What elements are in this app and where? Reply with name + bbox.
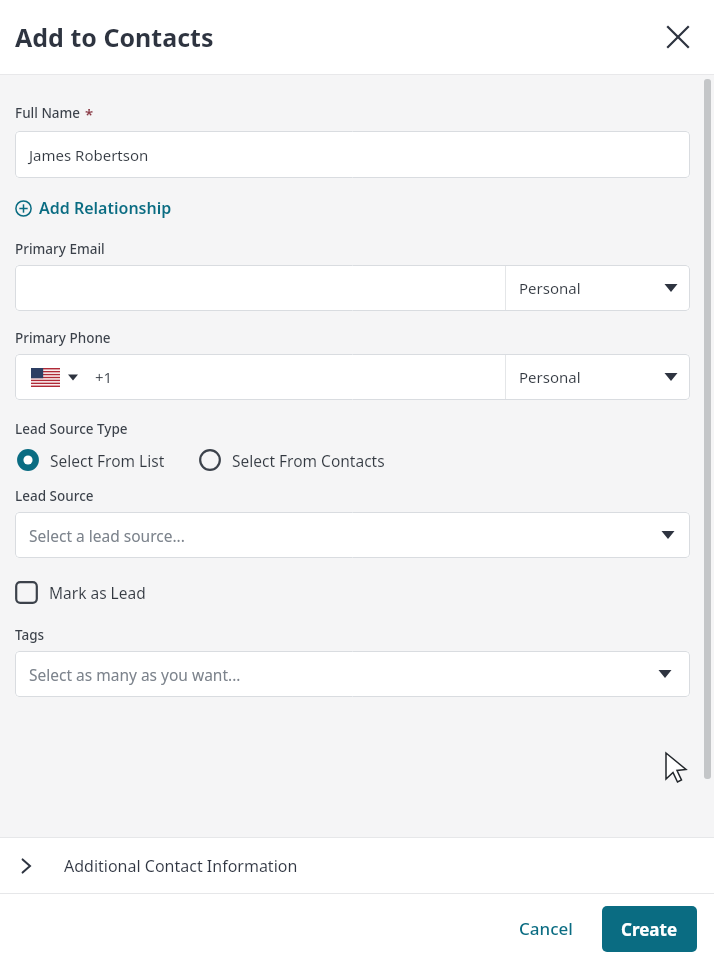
button[interactable]: Select From List [15, 447, 169, 473]
button[interactable] [15, 265, 505, 311]
staticText: Personal [519, 367, 660, 387]
staticText: Personal [519, 278, 660, 298]
staticText: Select From List [50, 450, 165, 471]
staticText: +1 [95, 367, 113, 387]
staticText: Lead Source Type [15, 420, 128, 438]
staticText: Create [621, 918, 678, 941]
staticText: Tags [15, 626, 45, 644]
button[interactable]: James Robertson [15, 131, 690, 178]
button[interactable]: Select as many as you want... [15, 651, 690, 697]
staticText: Primary Phone [15, 329, 111, 347]
button[interactable]: Select a lead source... [15, 512, 690, 558]
button[interactable]: Additional Contact Information [0, 838, 714, 893]
staticText: James Robertson [29, 145, 149, 165]
staticText: Full Name [15, 104, 81, 122]
button[interactable]: Personal [506, 265, 690, 311]
button[interactable]: +1 [15, 354, 505, 400]
button[interactable]: Cancel [505, 907, 587, 950]
button[interactable]: Select From Contacts [197, 447, 389, 473]
staticText: Lead Source [15, 487, 94, 505]
staticText: Additional Contact Information [64, 855, 298, 877]
button[interactable]: Personal [506, 354, 690, 400]
staticText: Select From Contacts [232, 450, 385, 471]
staticText: Add Relationship [39, 197, 172, 219]
button[interactable]: Add Relationship [15, 197, 172, 219]
staticText: Select a lead source... [29, 525, 185, 546]
staticText: * [81, 104, 94, 124]
staticText: Cancel [519, 917, 573, 940]
button[interactable]: Mark as Lead [15, 581, 146, 604]
button[interactable]: Create [602, 906, 697, 952]
staticText: Select as many as you want... [29, 664, 241, 685]
staticText: Add to Contacts [15, 20, 214, 54]
staticText: Primary Email [15, 240, 105, 258]
staticText: Mark as Lead [49, 582, 146, 603]
button[interactable]: Close [656, 15, 700, 59]
